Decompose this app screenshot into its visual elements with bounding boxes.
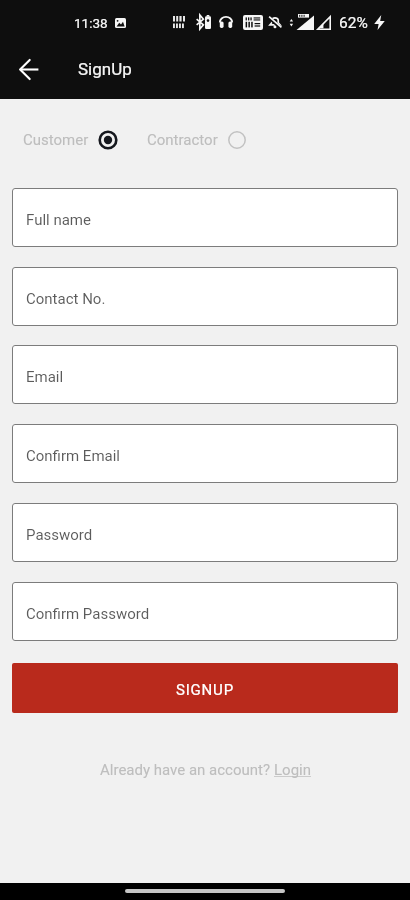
staticText: SIGNUP	[176, 681, 234, 699]
button[interactable]: Confirm Password	[12, 582, 398, 641]
staticText: Customer	[23, 131, 89, 149]
button[interactable]: Confirm Email	[12, 424, 398, 483]
staticText: 11:38	[74, 15, 108, 31]
staticText: Confirm Password	[26, 605, 150, 623]
button[interactable]: SIGNUP	[12, 663, 398, 713]
staticText: Login	[274, 761, 311, 779]
button[interactable]: Login	[274, 761, 311, 779]
button[interactable]: Password	[12, 503, 398, 562]
button[interactable]: Full name	[12, 188, 398, 247]
staticText: Contact No.	[26, 290, 106, 308]
staticText: 62%	[339, 14, 368, 32]
button[interactable]: Back	[10, 50, 48, 88]
staticText: Contractor	[147, 131, 218, 149]
staticText: Password	[26, 526, 93, 544]
button[interactable]: Contractor	[147, 122, 247, 158]
staticText: Email	[26, 368, 64, 386]
button[interactable]: Customer	[23, 122, 118, 158]
staticText: Confirm Email	[26, 447, 121, 465]
button[interactable]: Email	[12, 345, 398, 404]
staticText: Already have an account?	[100, 761, 274, 779]
staticText: Full name	[26, 211, 91, 229]
staticText: SignUp	[78, 59, 132, 79]
button[interactable]: Contact No.	[12, 267, 398, 326]
